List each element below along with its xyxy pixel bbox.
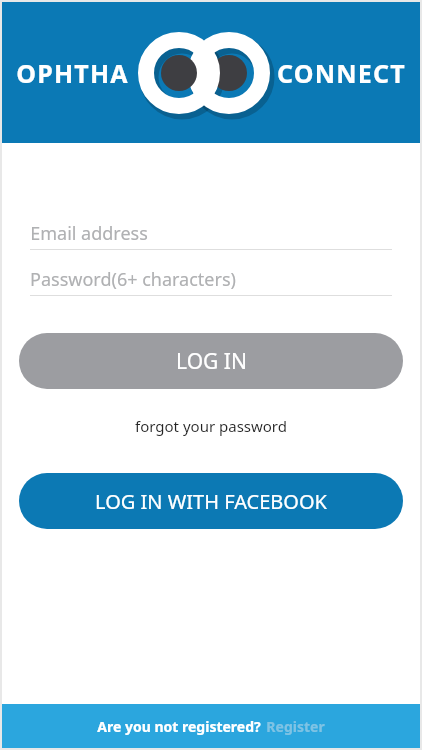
staticText: Email address [30,221,148,246]
button[interactable]: forgot your password [2,416,420,436]
staticText: LOG IN [176,347,247,376]
staticText: Are you not registered? [97,717,261,736]
staticText: forgot your password [135,416,287,436]
button[interactable]: LOG IN [19,333,403,389]
button[interactable]: LOG IN WITH FACEBOOK [19,473,403,529]
button[interactable]: Are you not registered? [2,704,420,748]
button[interactable]: Password(6+ characters) [30,264,392,296]
staticText: Register [266,717,325,736]
staticText: OPHTHA [16,56,129,90]
staticText: LOG IN WITH FACEBOOK [95,488,327,515]
button[interactable]: Email address [30,218,392,250]
staticText: CONNECT [277,56,406,90]
staticText: Password(6+ characters) [30,267,236,292]
